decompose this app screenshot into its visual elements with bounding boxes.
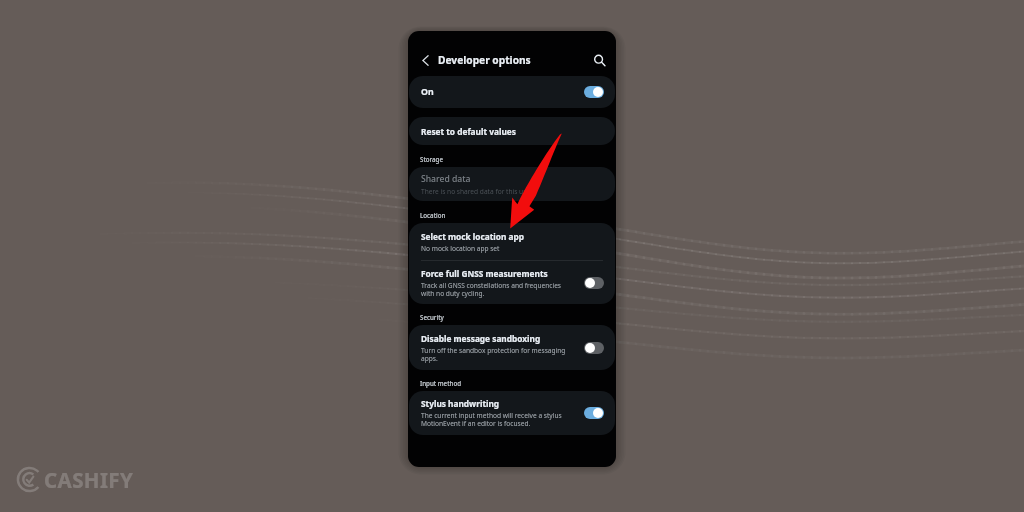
staticText: Reset to default values xyxy=(421,126,516,137)
staticText: Input method xyxy=(420,379,462,387)
staticText: Stylus handwriting xyxy=(421,398,500,409)
button[interactable]: Switch off xyxy=(584,342,604,354)
staticText: Security xyxy=(420,313,444,321)
button[interactable]: On xyxy=(409,76,615,108)
button[interactable]: Select mock location app xyxy=(409,223,615,304)
staticText: Turn off the sandbox protection for mess… xyxy=(421,346,566,363)
staticText: The current input method will receive a … xyxy=(421,411,562,428)
button[interactable]: Switch off xyxy=(584,277,604,289)
staticText: CASHIFY xyxy=(44,466,134,494)
button[interactable]: Back xyxy=(417,52,433,68)
staticText: Disable message sandboxing xyxy=(421,333,541,344)
button[interactable]: Disable message sandboxing xyxy=(409,325,615,370)
staticText: On xyxy=(421,86,434,98)
staticText: Storage xyxy=(420,155,443,163)
staticText: No mock location app set xyxy=(421,244,500,253)
button[interactable]: Reset to default values xyxy=(409,117,615,145)
staticText: Location xyxy=(420,211,446,219)
button[interactable]: Stylus handwriting xyxy=(409,391,615,435)
staticText: Select mock location app xyxy=(421,231,525,242)
button[interactable]: Switch on xyxy=(584,407,604,419)
staticText: Shared data xyxy=(421,173,471,185)
button[interactable]: Switch on xyxy=(584,86,604,98)
staticText: There is no shared data for this user xyxy=(421,187,533,196)
staticText: Track all GNSS constellations and freque… xyxy=(421,281,562,298)
staticText: Developer options xyxy=(438,53,531,67)
staticText: Force full GNSS measurements xyxy=(421,268,548,279)
button[interactable]: Shared data xyxy=(409,167,615,201)
button[interactable]: Search xyxy=(590,51,608,69)
